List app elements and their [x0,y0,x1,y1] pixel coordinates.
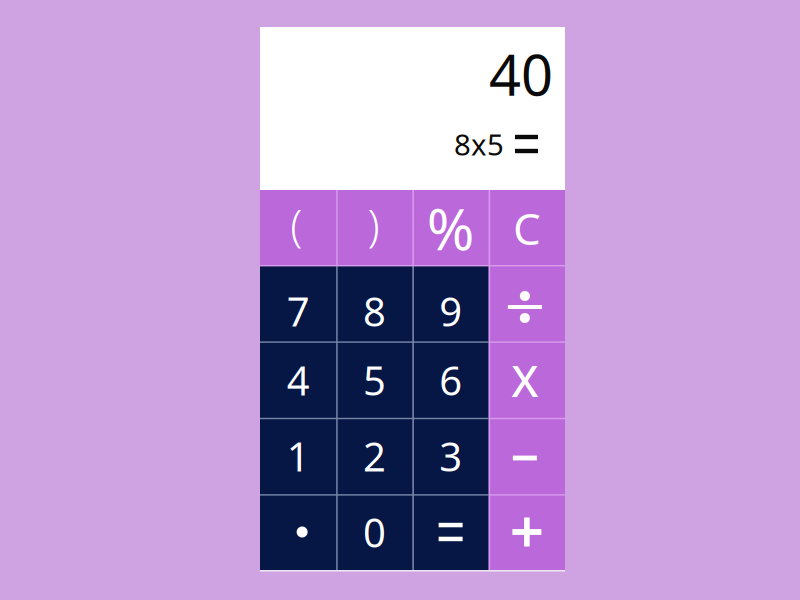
staticText: C [513,199,541,257]
button[interactable]: 8 [336,266,412,342]
staticText: % [427,190,475,266]
staticText: 40 [489,37,553,111]
button[interactable]: 9 [412,266,489,342]
button[interactable]: 0 [336,494,412,570]
staticText: 4 [287,353,310,406]
staticText: X [511,351,538,409]
staticText: 8x5 [454,124,504,163]
staticText: 9 [439,284,462,337]
button[interactable]: 3 [412,418,489,494]
staticText: 8 [363,284,386,337]
staticText: 6 [439,353,462,406]
button[interactable]: Decimal point [260,494,336,570]
staticText: 7 [287,284,310,337]
button[interactable]: ) [336,190,412,266]
staticText: ) [367,196,379,254]
button[interactable]: ( [260,190,336,266]
button[interactable]: % [412,190,489,266]
staticText: ( [290,196,302,254]
button[interactable]: C [489,190,565,266]
button[interactable]: 5 [336,342,412,418]
staticText: 0 [363,505,386,558]
button[interactable]: Minus [489,418,565,494]
button[interactable]: 1 [260,418,336,494]
button[interactable]: 7 [260,266,336,342]
button[interactable]: X [489,342,565,418]
staticText: 1 [287,429,310,482]
button[interactable]: Divide [489,266,565,342]
staticText: 2 [363,429,386,482]
staticText: 5 [363,353,386,406]
button[interactable]: Plus [489,494,565,570]
button[interactable]: 6 [412,342,489,418]
button[interactable]: 4 [260,342,336,418]
staticText: 3 [439,429,462,482]
button[interactable]: 2 [336,418,412,494]
button[interactable]: Equals [412,494,489,570]
